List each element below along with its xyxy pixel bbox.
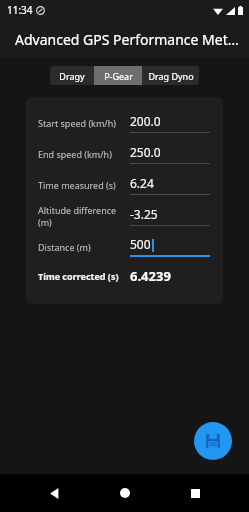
staticText: Dragy bbox=[59, 70, 85, 82]
staticText: 200.0 bbox=[130, 113, 161, 129]
button[interactable]: Recents bbox=[178, 476, 212, 510]
button[interactable]: Dragy bbox=[50, 66, 94, 85]
button[interactable]: Home bbox=[108, 476, 142, 510]
staticText: 11:34 bbox=[7, 3, 33, 17]
staticText: Drag Dyno bbox=[148, 70, 194, 82]
button[interactable]: Start speed (km/h) bbox=[38, 107, 211, 138]
button[interactable]: Time corrected (s) bbox=[38, 262, 211, 290]
button[interactable]: Drag Dyno bbox=[142, 66, 199, 85]
staticText: 500 bbox=[130, 236, 151, 252]
staticText: Advanced GPS Performance Mete… bbox=[15, 30, 241, 49]
button[interactable]: Save bbox=[194, 422, 232, 460]
staticText: Altitude difference (m) bbox=[38, 204, 130, 228]
button[interactable]: Back bbox=[37, 476, 71, 510]
staticText: Time corrected (s) bbox=[38, 270, 130, 282]
button[interactable]: Distance (m) bbox=[38, 231, 211, 262]
staticText: Start speed (km/h) bbox=[38, 117, 130, 129]
staticText: P-Gear bbox=[104, 70, 133, 82]
staticText: Distance (m) bbox=[38, 241, 130, 253]
button[interactable]: End speed (km/h) bbox=[38, 138, 211, 169]
button[interactable]: Time measured (s) bbox=[38, 169, 211, 200]
button[interactable]: P-Gear bbox=[94, 66, 142, 85]
staticText: Time measured (s) bbox=[38, 179, 130, 191]
staticText: -3.25 bbox=[130, 206, 158, 222]
staticText: End speed (km/h) bbox=[38, 148, 130, 160]
staticText: 6.24 bbox=[130, 175, 154, 191]
button[interactable]: Altitude difference (m) bbox=[38, 200, 211, 231]
staticText: 250.0 bbox=[130, 144, 161, 160]
staticText: 6.4239 bbox=[130, 267, 171, 285]
